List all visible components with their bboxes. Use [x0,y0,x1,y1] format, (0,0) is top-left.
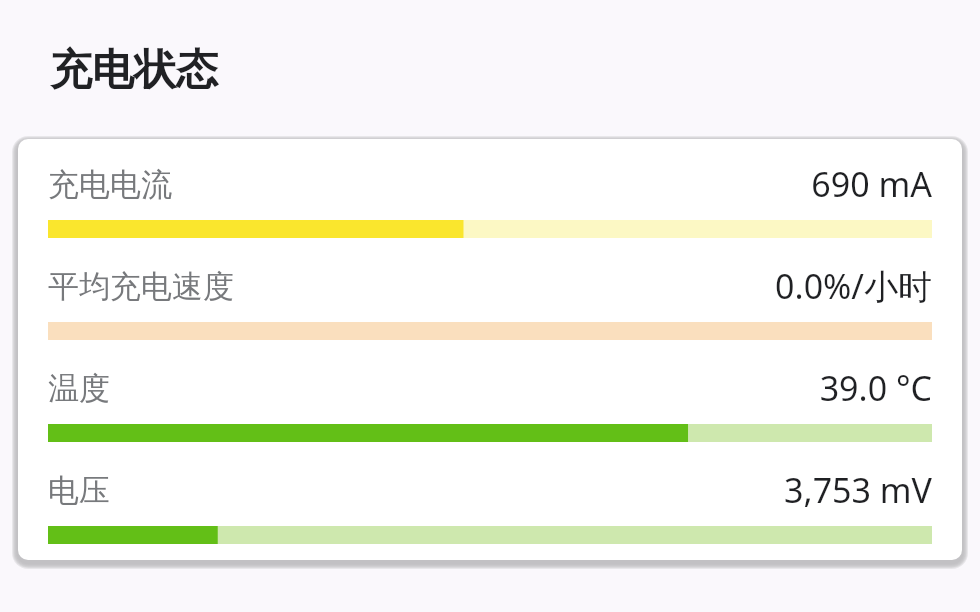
staticText: 39.0 °C [819,365,932,411]
staticText: 0.0%/小时 [775,263,932,309]
button[interactable]: 电压 [18,467,962,544]
staticText: 温度 [48,369,110,408]
staticText: 充电电流 [48,165,172,204]
staticText: 3,753 mV [784,467,932,513]
staticText: 690 mA [811,161,932,207]
button[interactable]: 平均充电速度 [18,263,962,340]
button[interactable]: 充电电流 [18,161,962,238]
staticText: 电压 [48,471,110,510]
staticText: 充电状态 [50,44,218,97]
button[interactable]: 温度 [18,365,962,442]
staticText: 平均充电速度 [48,267,234,306]
